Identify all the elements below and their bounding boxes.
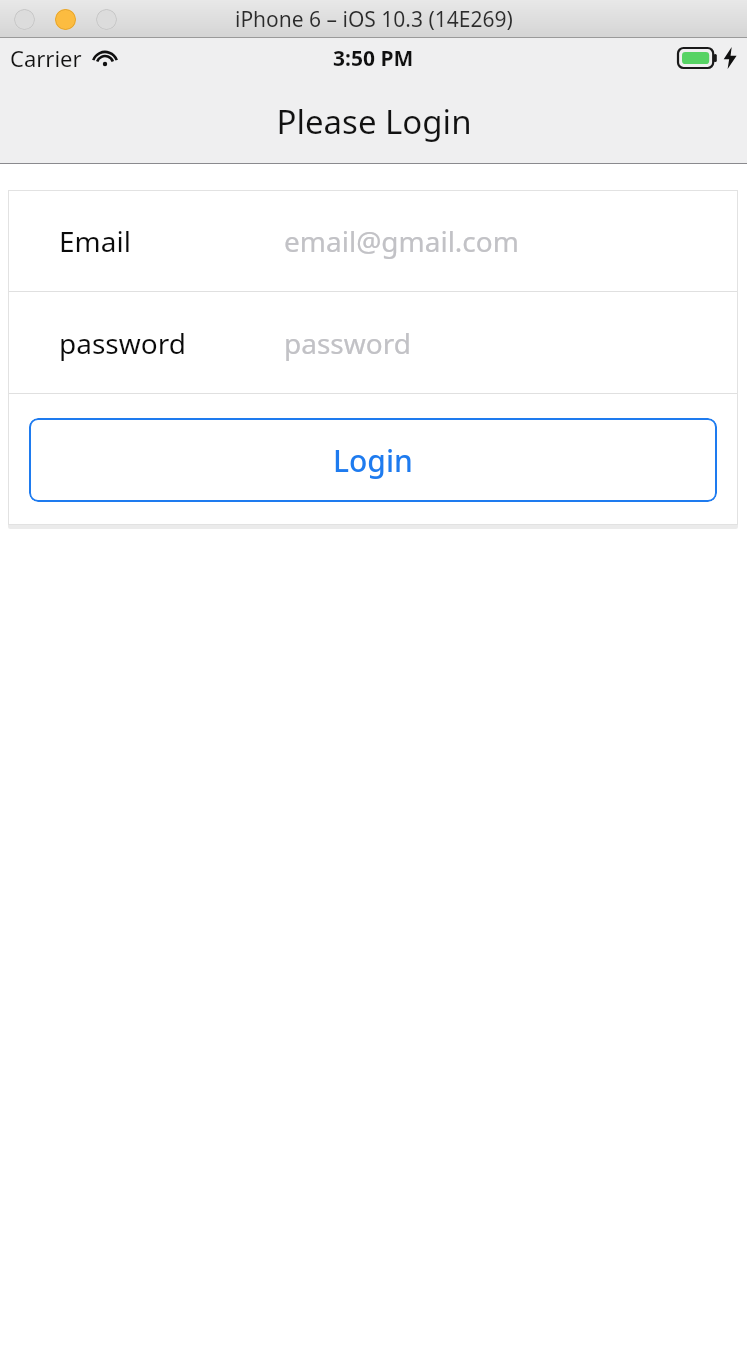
button[interactable]: Email xyxy=(8,190,738,291)
button[interactable]: password xyxy=(8,292,738,393)
staticText: Email xyxy=(59,222,131,260)
staticText: Login xyxy=(333,440,413,481)
staticText: iPhone 6 – iOS 10.3 (14E269) xyxy=(235,5,513,34)
button[interactable]: Zoom xyxy=(96,9,117,30)
staticText: 3:50 PM xyxy=(333,44,414,73)
staticText: password xyxy=(284,324,411,362)
staticText: Please Login xyxy=(276,99,472,144)
staticText: Carrier xyxy=(10,43,82,73)
button[interactable]: Minimize xyxy=(55,9,76,30)
button[interactable]: Close xyxy=(14,9,35,30)
button[interactable]: Login xyxy=(29,418,717,502)
staticText: email@gmail.com xyxy=(284,222,519,260)
staticText: password xyxy=(59,324,186,362)
